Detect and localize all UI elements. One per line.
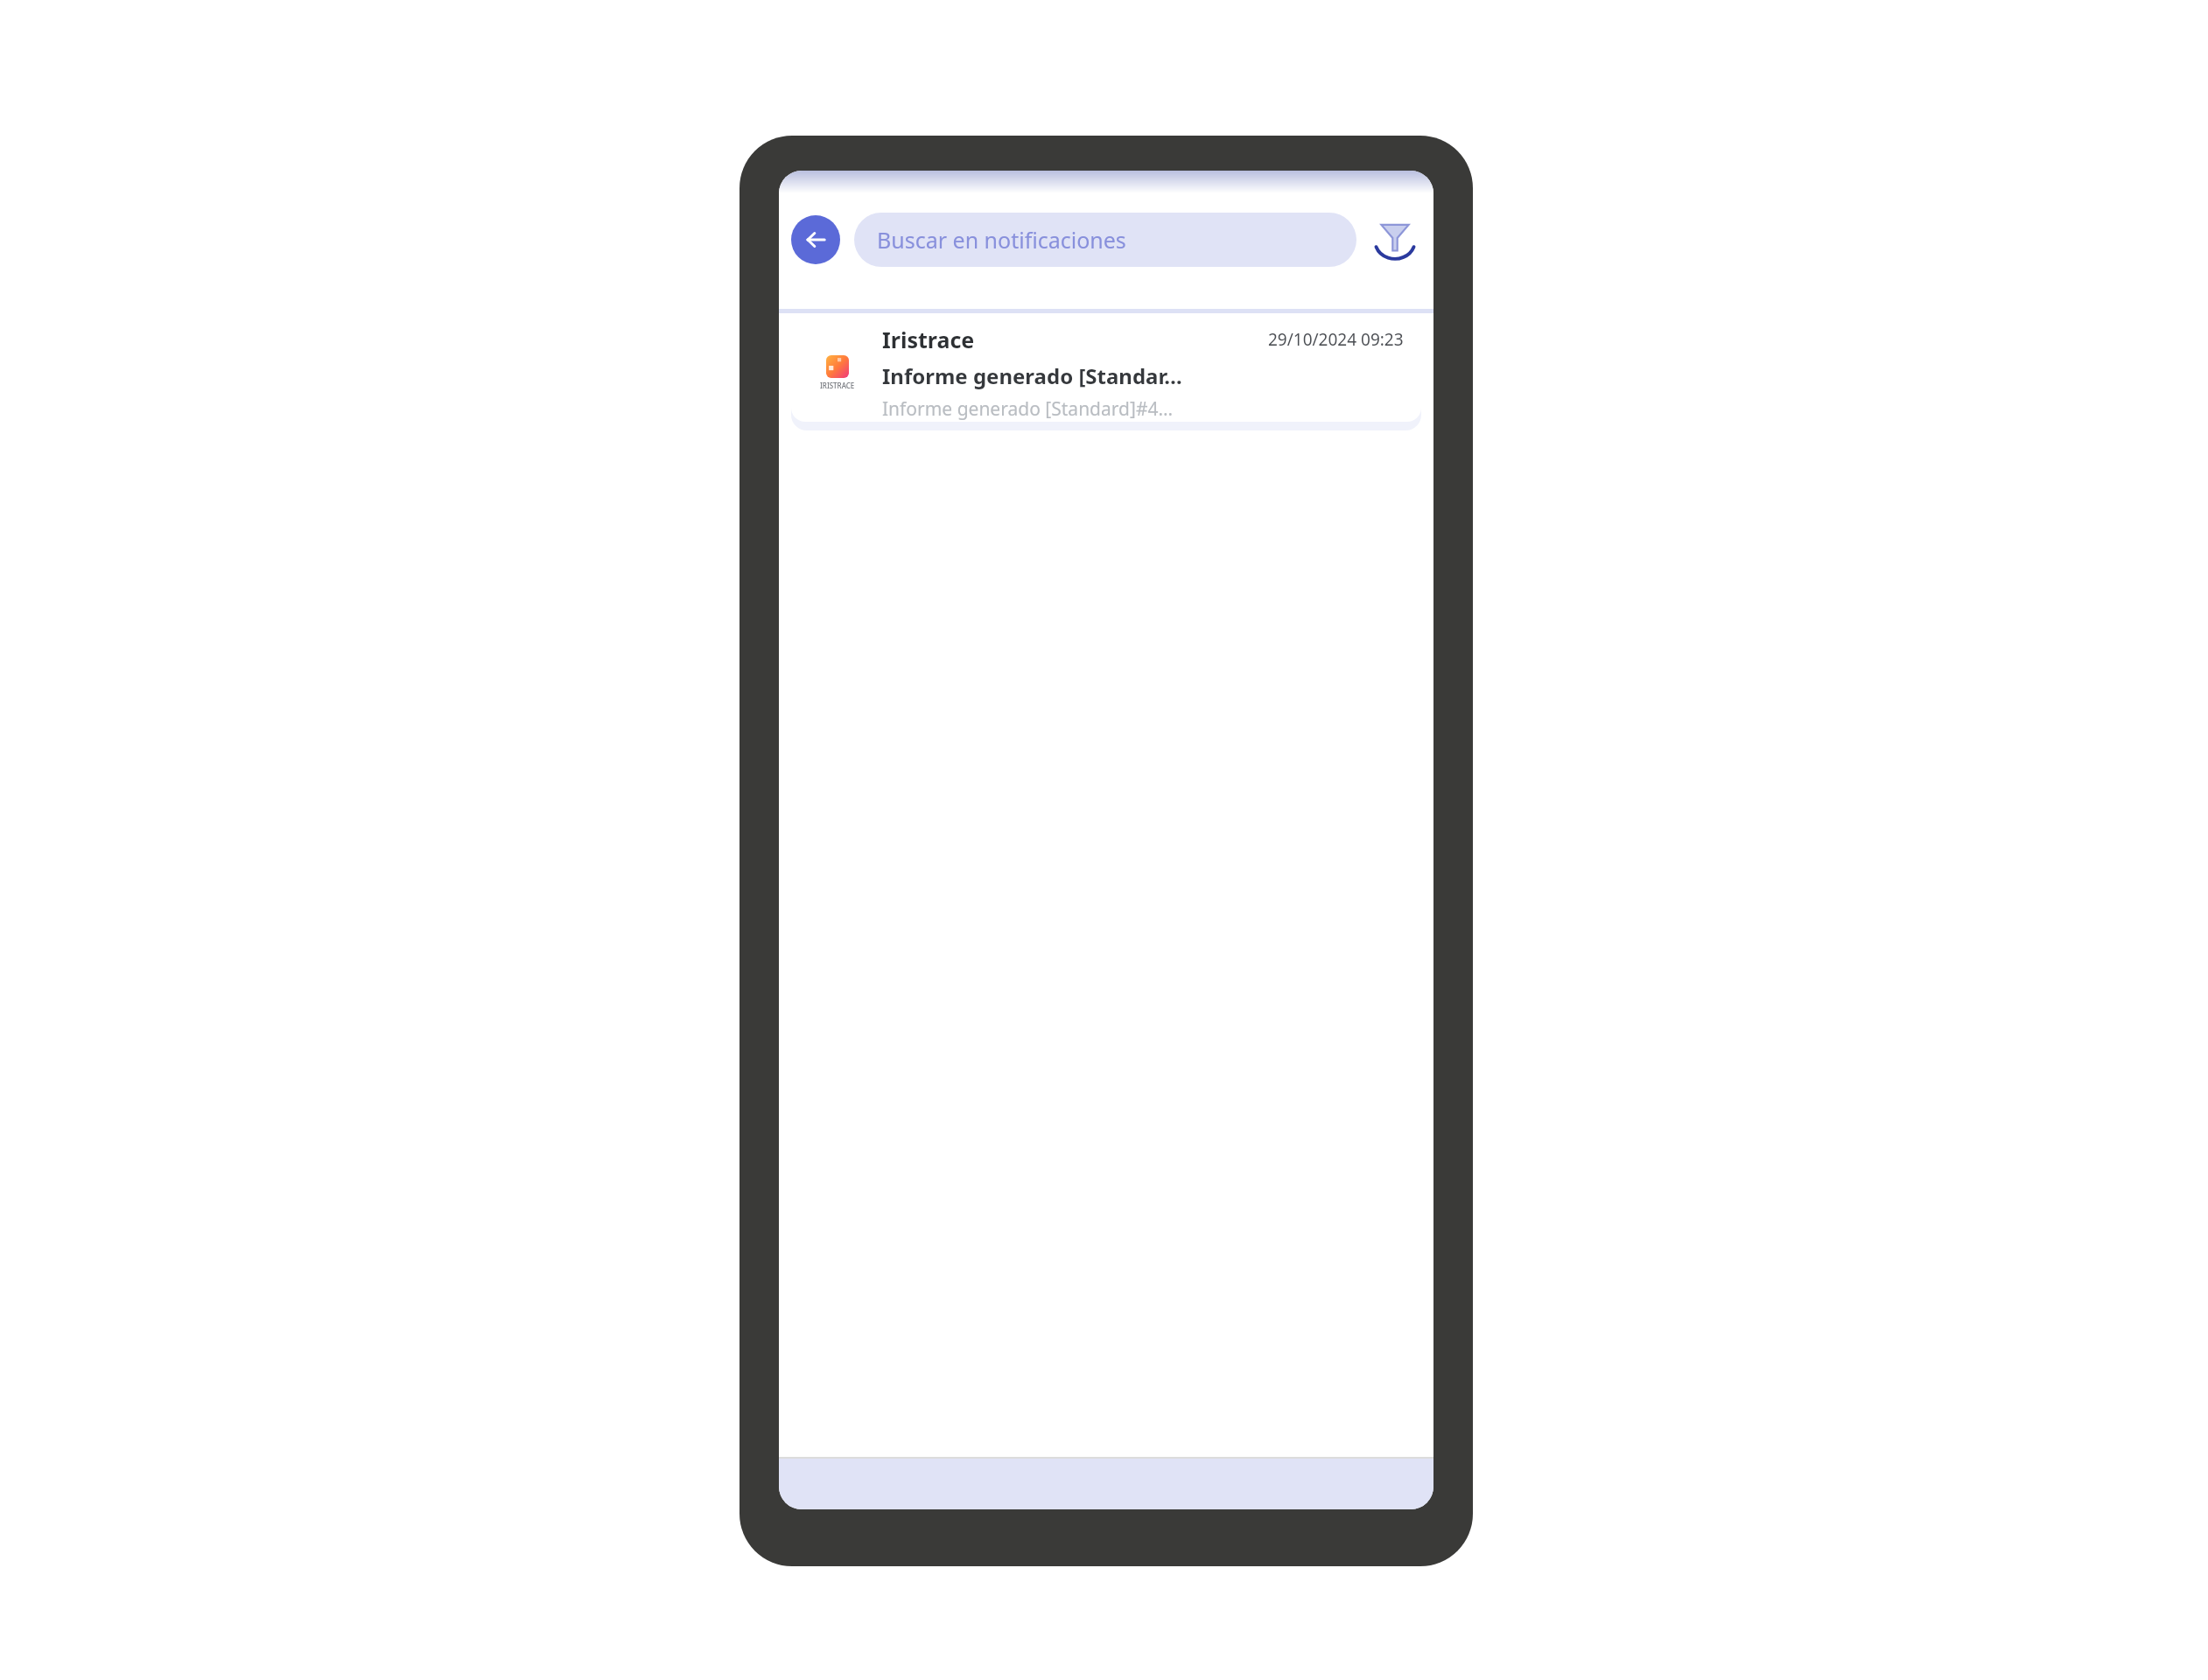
button[interactable]: IRISTRACE [791,324,1421,422]
staticText: Iristrace [882,325,975,354]
button[interactable]: Filter [1369,213,1421,266]
staticText: 29/10/2024 09:23 [1268,328,1404,351]
staticText: Informe generado [Standard]#4… [882,396,1174,422]
button[interactable]: Buscar en notificaciones [854,213,1356,267]
staticText: IRISTRACE [820,381,855,390]
button[interactable] [779,1459,1433,1509]
button[interactable]: Back [791,215,840,264]
staticText: Informe generado [Standar… [882,361,1182,390]
staticText: Buscar en notificaciones [877,225,1126,255]
